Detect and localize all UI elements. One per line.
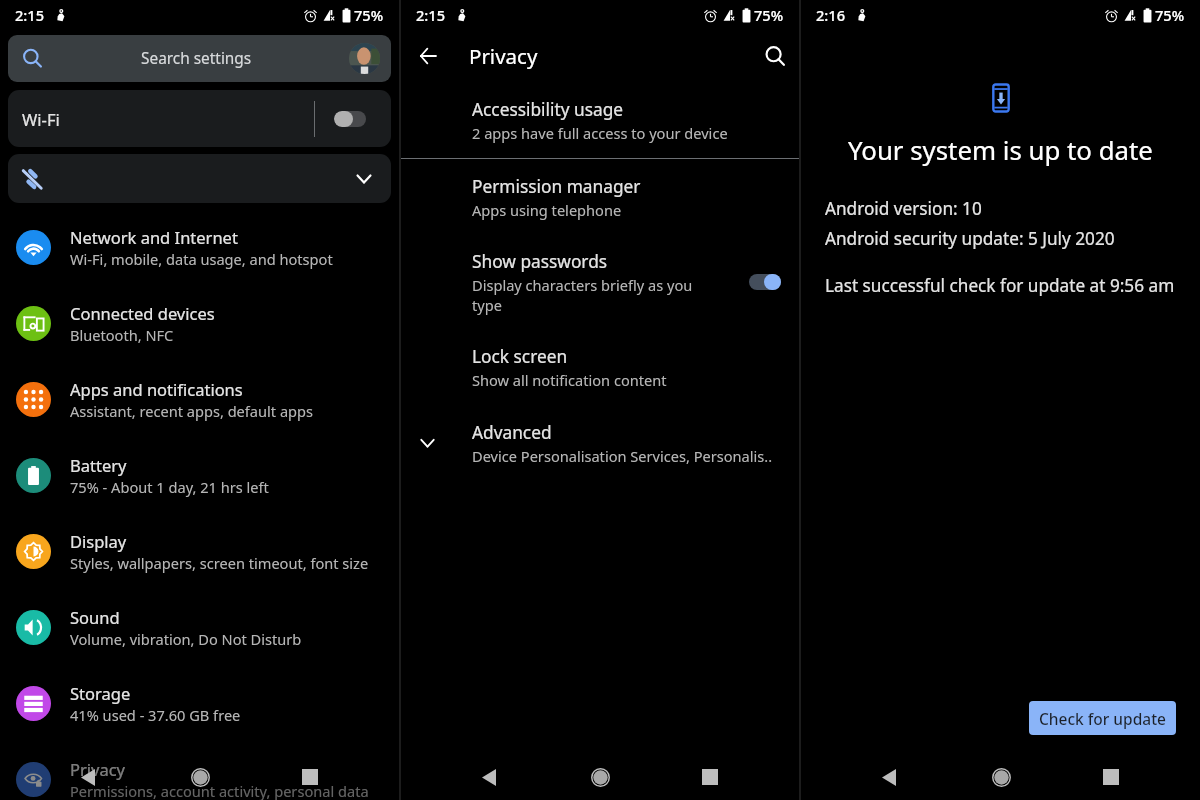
staticText: Battery: [70, 454, 127, 476]
button[interactable]: Show passwords toggle: [749, 274, 781, 290]
button[interactable]: Lock screen: [401, 329, 799, 405]
staticText: 2:16: [816, 5, 846, 25]
staticText: Volume, vibration, Do Not Disturb: [70, 629, 302, 649]
button[interactable]: Sound: [0, 589, 399, 665]
staticText: Android version: 10: [825, 197, 982, 220]
button[interactable]: Advanced: [401, 405, 799, 481]
staticText: Android security update: 5 July 2020: [825, 227, 1115, 250]
button[interactable]: Show passwords: [401, 235, 799, 329]
staticText: Connected devices: [70, 302, 215, 324]
staticText: Device Personalisation Services, Persona…: [472, 446, 773, 466]
button[interactable]: Bluetooth off: [8, 154, 391, 203]
button[interactable]: Accessibility usage: [401, 83, 799, 158]
staticText: 75%: [1155, 5, 1185, 25]
button[interactable]: Account: [349, 43, 380, 74]
staticText: Last successful check for update at 9:56…: [825, 274, 1175, 297]
staticText: Show all notification content: [472, 370, 667, 390]
staticText: Privacy: [70, 758, 126, 780]
staticText: Bluetooth, NFC: [70, 325, 174, 345]
button[interactable]: Search: [751, 30, 799, 82]
button[interactable]: Wi-Fi: [8, 90, 391, 147]
staticText: Assistant, recent apps, default apps: [70, 401, 314, 421]
staticText: Permission manager: [472, 175, 641, 199]
staticText: Wi-Fi, mobile, data usage, and hotspot: [70, 249, 333, 269]
button[interactable]: Check for update: [1029, 701, 1176, 735]
button[interactable]: Back: [401, 30, 455, 82]
button[interactable]: Back: [64, 753, 112, 800]
button[interactable]: Home: [576, 753, 624, 800]
button[interactable]: Display: [0, 513, 399, 589]
staticText: Sound: [70, 606, 120, 628]
button[interactable]: Recent apps: [1087, 753, 1135, 800]
button[interactable]: Battery: [0, 437, 399, 513]
staticText: Display characters briefly as you type: [472, 275, 693, 315]
staticText: Advanced: [472, 421, 552, 445]
button[interactable]: Back: [465, 753, 513, 800]
staticText: Check for update: [1039, 708, 1166, 729]
staticText: Styles, wallpapers, screen timeout, font…: [70, 553, 369, 573]
button[interactable]: Connected devices: [0, 285, 399, 361]
staticText: Lock screen: [472, 345, 568, 369]
staticText: 75%: [354, 5, 384, 25]
button[interactable]: Home: [977, 753, 1025, 800]
staticText: Wi-Fi: [22, 108, 60, 130]
staticText: 2:15: [416, 5, 446, 25]
staticText: Network and Internet: [70, 226, 238, 248]
staticText: 75% - About 1 day, 21 hrs left: [70, 477, 269, 497]
button[interactable]: Permission manager: [401, 159, 799, 235]
staticText: Search settings: [141, 48, 252, 69]
button[interactable]: Home: [176, 753, 224, 800]
staticText: Show passwords: [472, 250, 608, 274]
button[interactable]: Back: [865, 753, 913, 800]
staticText: Apps using telephone: [472, 200, 622, 220]
staticText: Permissions, account activity, personal …: [70, 781, 369, 800]
button[interactable]: Storage: [0, 665, 399, 741]
button[interactable]: Recent apps: [686, 753, 734, 800]
staticText: 75%: [754, 5, 784, 25]
button[interactable]: Network and Internet: [0, 209, 399, 285]
staticText: Apps and notifications: [70, 378, 243, 400]
button[interactable]: Search settings: [8, 35, 391, 82]
staticText: Display: [70, 530, 127, 552]
button[interactable]: Wi-Fi toggle: [334, 111, 366, 127]
staticText: Privacy: [469, 42, 538, 70]
button[interactable]: Privacy: [0, 741, 399, 800]
staticText: Your system is up to date: [848, 132, 1153, 167]
staticText: Storage: [70, 682, 131, 704]
button[interactable]: Apps and notifications: [0, 361, 399, 437]
other: Bluetooth off: [21, 168, 43, 190]
staticText: 2:15: [15, 5, 45, 25]
button[interactable]: Recent apps: [286, 753, 334, 800]
staticText: 41% used - 37.60 GB free: [70, 705, 241, 725]
staticText: Accessibility usage: [472, 98, 624, 122]
staticText: 2 apps have full access to your device: [472, 123, 728, 143]
other: System update: [985, 82, 1017, 114]
